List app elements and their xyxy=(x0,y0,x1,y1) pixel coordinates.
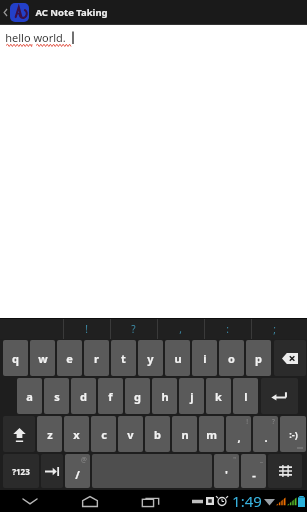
staticText: hello world. xyxy=(5,30,66,45)
staticText: AC Note Taking xyxy=(35,6,108,19)
button[interactable]: ! xyxy=(63,318,110,339)
staticText: m xyxy=(206,427,217,442)
button[interactable]: w xyxy=(30,340,55,376)
staticText: i xyxy=(203,351,207,366)
staticText: n xyxy=(181,427,189,442)
staticText: :-) xyxy=(289,428,298,440)
staticText: v xyxy=(127,427,134,442)
staticText: s xyxy=(54,389,60,404)
staticText: q xyxy=(12,351,19,366)
button[interactable]: Home xyxy=(60,490,120,512)
button[interactable]: _ xyxy=(241,454,266,488)
button[interactable]: x xyxy=(64,416,89,452)
staticText: g xyxy=(134,389,141,404)
staticText: l xyxy=(244,389,248,404)
staticText: , xyxy=(237,430,241,445)
button[interactable]: t xyxy=(111,340,136,376)
staticText: , xyxy=(179,322,182,336)
button[interactable]: :-) xyxy=(280,416,306,452)
staticText: w xyxy=(38,351,48,366)
staticText: - xyxy=(252,467,256,482)
staticText: k xyxy=(215,389,222,404)
button[interactable]: i xyxy=(192,340,217,376)
staticText: j xyxy=(190,389,194,404)
button[interactable]: hello world. xyxy=(0,25,307,318)
button[interactable]: k xyxy=(206,378,231,414)
staticText: " xyxy=(233,455,236,464)
button[interactable]: m xyxy=(199,416,224,452)
staticText: y xyxy=(147,351,154,366)
button[interactable]: h xyxy=(152,378,177,414)
button[interactable]: b xyxy=(145,416,170,452)
button[interactable]: c xyxy=(91,416,116,452)
staticText: _ xyxy=(260,455,263,464)
button[interactable]: Backspace xyxy=(274,340,306,376)
button[interactable]: @ xyxy=(65,454,90,488)
button[interactable]: Hide keyboard xyxy=(0,490,60,512)
staticText: @ xyxy=(81,455,87,464)
button[interactable]: ; xyxy=(251,318,298,339)
button[interactable]: ! xyxy=(226,416,251,452)
button[interactable]: o xyxy=(219,340,244,376)
button[interactable]: v xyxy=(118,416,143,452)
button[interactable]: d xyxy=(71,378,96,414)
staticText: : xyxy=(226,322,229,336)
staticText: ? xyxy=(272,417,275,426)
button[interactable]: p xyxy=(246,340,271,376)
staticText: x xyxy=(73,427,80,442)
staticText: 1:49 xyxy=(232,491,262,511)
button[interactable]: a xyxy=(17,378,42,414)
staticText: p xyxy=(255,351,262,366)
button[interactable]: r xyxy=(84,340,109,376)
button[interactable]: , xyxy=(157,318,204,339)
button[interactable]: ? xyxy=(253,416,278,452)
button[interactable]: : xyxy=(204,318,251,339)
staticText: ! xyxy=(85,322,88,336)
button[interactable]: ?123 xyxy=(3,454,39,488)
button[interactable]: Recent apps xyxy=(120,490,180,512)
button[interactable]: s xyxy=(44,378,69,414)
staticText: ! xyxy=(246,417,248,426)
button[interactable]: Enter xyxy=(261,378,298,414)
button[interactable]: q xyxy=(3,340,28,376)
button[interactable]: Input method xyxy=(268,454,302,488)
staticText: e xyxy=(66,351,73,366)
button[interactable]: g xyxy=(125,378,150,414)
button[interactable]: u xyxy=(165,340,190,376)
staticText: t xyxy=(121,351,126,366)
staticText: . xyxy=(264,430,268,445)
staticText: d xyxy=(80,389,87,404)
staticText: r xyxy=(94,351,99,366)
staticText: c xyxy=(101,427,107,442)
button[interactable]: l xyxy=(233,378,258,414)
staticText: z xyxy=(47,427,53,442)
button[interactable]: f xyxy=(98,378,123,414)
button[interactable]: " xyxy=(214,454,239,488)
staticText: ' xyxy=(225,467,228,482)
button[interactable]: Shift xyxy=(3,416,35,452)
button[interactable]: e xyxy=(57,340,82,376)
staticText: h xyxy=(161,389,169,404)
staticText: ?123 xyxy=(12,466,30,477)
staticText: ; xyxy=(273,322,276,336)
staticText: / xyxy=(75,467,80,482)
button[interactable]: j xyxy=(179,378,204,414)
button[interactable]: z xyxy=(37,416,62,452)
button[interactable]: y xyxy=(138,340,163,376)
button[interactable]: n xyxy=(172,416,197,452)
button[interactable]: ? xyxy=(110,318,157,339)
staticText: a xyxy=(26,389,33,404)
staticText: ? xyxy=(131,322,136,336)
staticText: u xyxy=(174,351,182,366)
staticText: o xyxy=(228,351,235,366)
button[interactable]: Tab xyxy=(41,454,63,488)
staticText: f xyxy=(108,389,113,404)
staticText: b xyxy=(154,427,161,442)
